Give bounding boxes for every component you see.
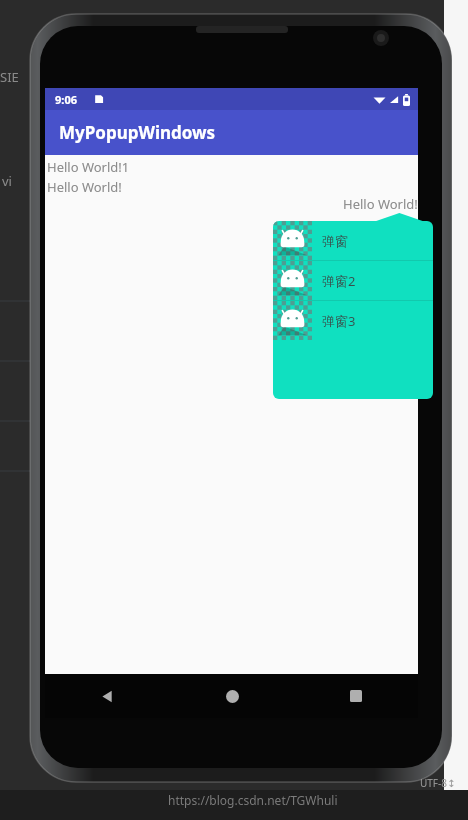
staticText: 弹窗 <box>322 233 348 249</box>
button[interactable]: 弹窗2 <box>273 261 433 300</box>
staticText: 弹窗2 <box>322 272 356 290</box>
staticText: https://blog.csdn.net/TGWhuli <box>168 792 338 808</box>
button[interactable]: Back <box>45 674 170 718</box>
staticText: vi <box>2 172 12 190</box>
staticText: MyPopupWindows <box>59 121 216 144</box>
staticText: Hello World! <box>343 195 418 213</box>
button[interactable]: Home <box>170 674 294 718</box>
staticText: Hello World!1 <box>47 158 130 176</box>
staticText: SIE <box>0 68 19 86</box>
staticText: Hello World! <box>47 178 122 196</box>
staticText: UTF-8↕ <box>420 776 456 790</box>
button[interactable]: MyPopupWindows <box>45 110 418 155</box>
staticText: 9:06 <box>55 92 77 107</box>
button[interactable]: Recent apps <box>294 674 418 718</box>
button[interactable]: 弹窗 <box>273 221 433 260</box>
staticText: 弹窗3 <box>322 312 356 330</box>
button[interactable]: 弹窗3 <box>273 301 433 340</box>
